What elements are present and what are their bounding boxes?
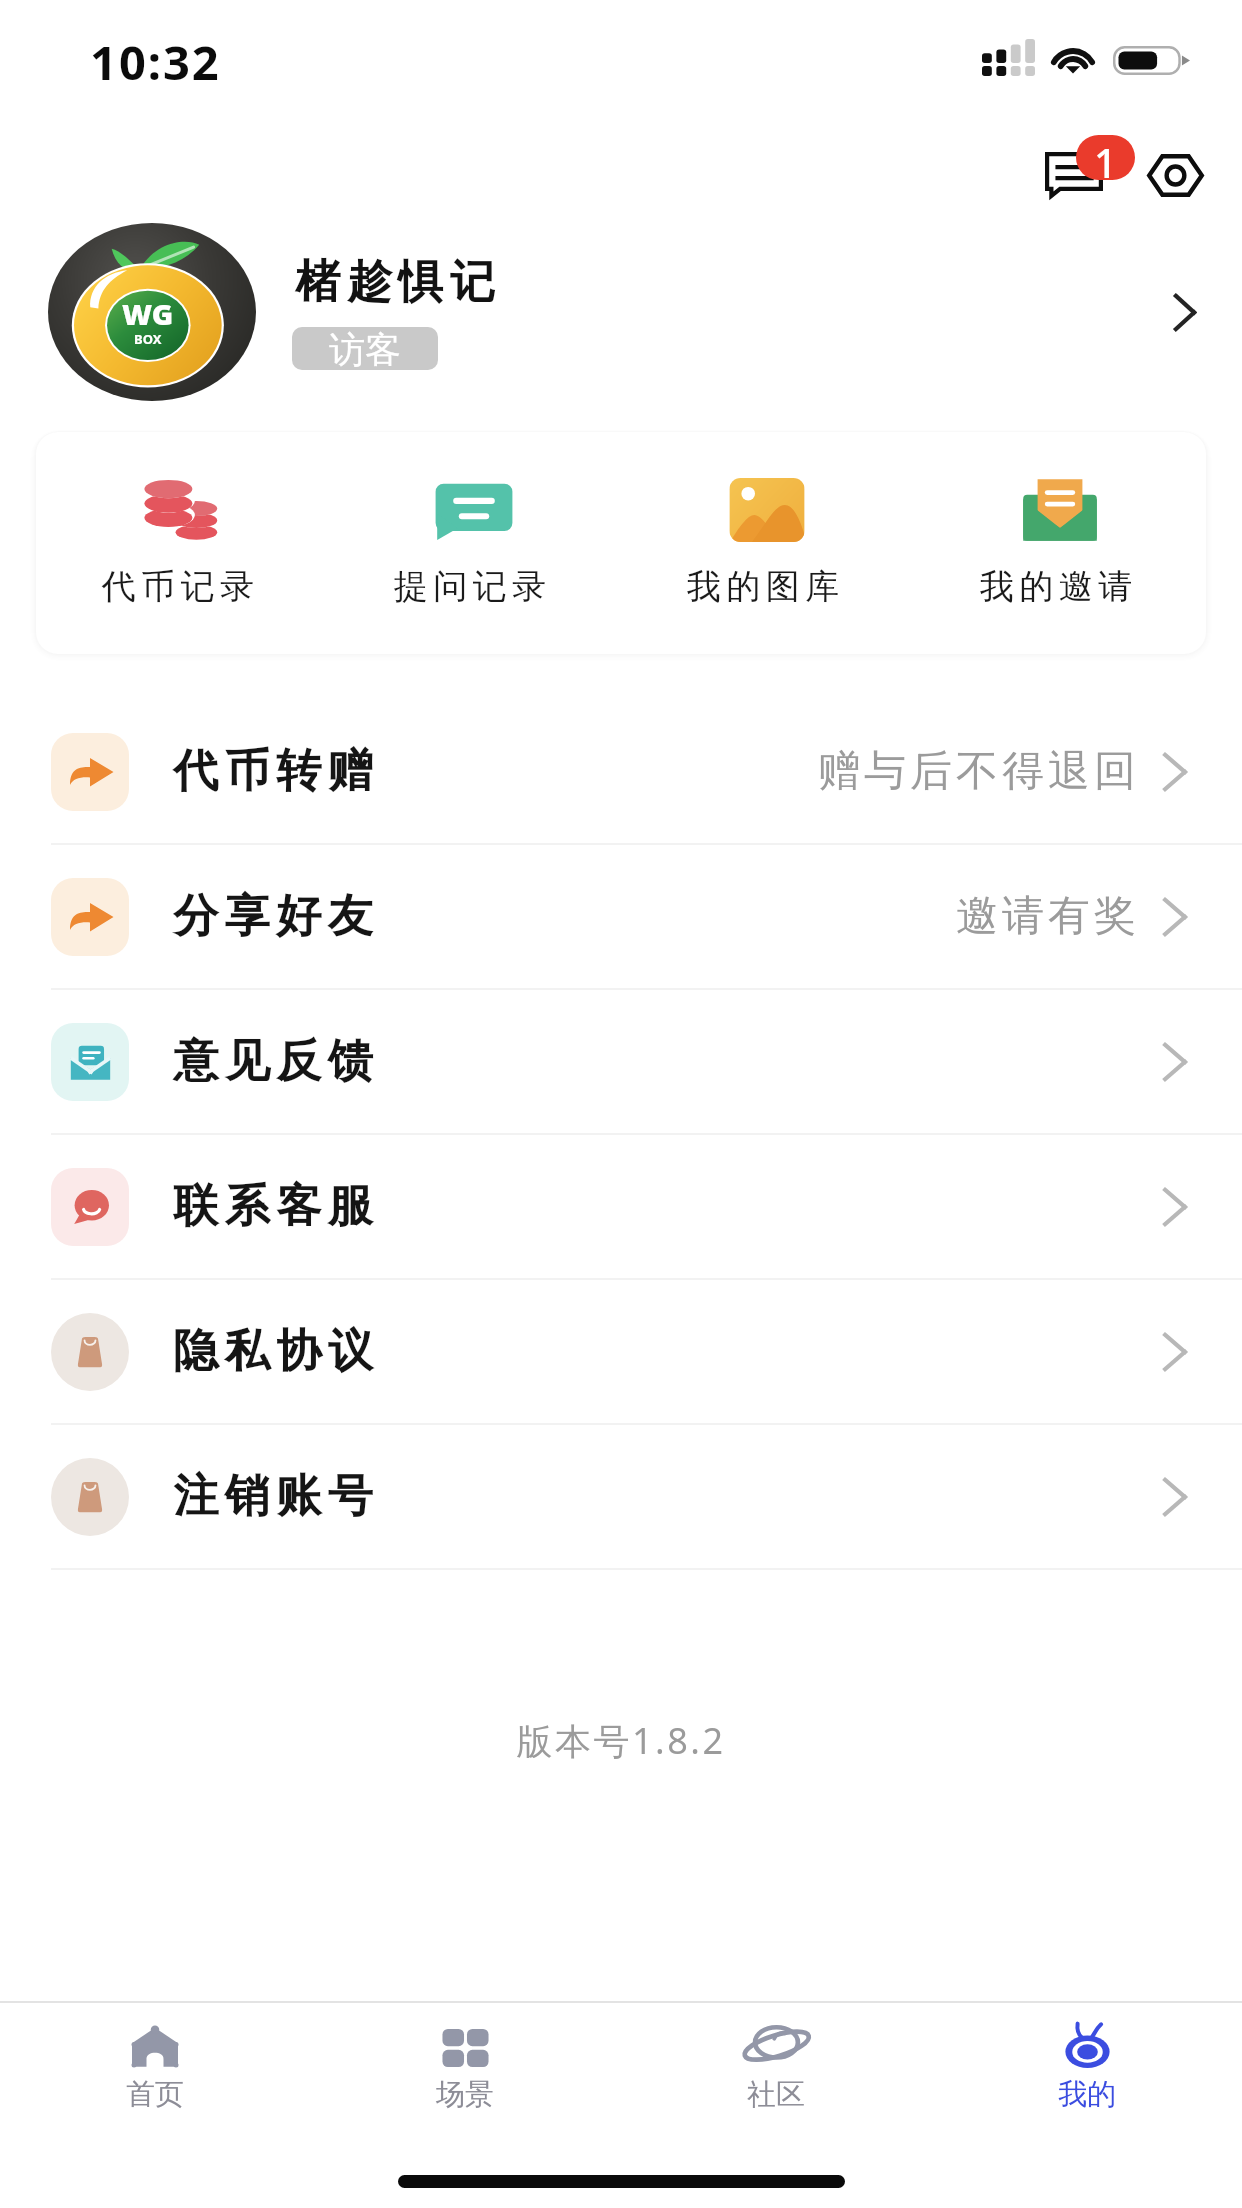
staticText: 邀请有奖 bbox=[954, 890, 1138, 943]
button[interactable]: 我的图库 bbox=[620, 432, 913, 608]
button[interactable]: 意见反馈 bbox=[0, 990, 1242, 1135]
staticText: BOX bbox=[134, 330, 162, 348]
staticText: 隐私协议 bbox=[170, 1323, 376, 1380]
staticText: 1 bbox=[1094, 135, 1117, 180]
button[interactable]: 社区 bbox=[620, 2022, 931, 2113]
staticText: 代币转赠 bbox=[170, 743, 376, 800]
staticText: 赠与后不得退回 bbox=[816, 745, 1138, 798]
button[interactable]: 联系客服 bbox=[0, 1135, 1242, 1280]
staticText: 我的邀请 bbox=[977, 565, 1135, 608]
button[interactable]: 首页 bbox=[0, 2022, 310, 2113]
button[interactable]: 设置 bbox=[1147, 154, 1204, 197]
button[interactable]: 我的邀请 bbox=[913, 432, 1206, 608]
staticText: 版本号1.8.2 bbox=[0, 1716, 1242, 1765]
button[interactable]: 分享好友 bbox=[0, 845, 1242, 990]
button[interactable]: 隐私协议 bbox=[0, 1280, 1242, 1425]
button[interactable]: 注销账号 bbox=[0, 1425, 1242, 1570]
staticText: 社区 bbox=[747, 2076, 805, 2113]
staticText: 我的图库 bbox=[684, 565, 842, 608]
staticText: 首页 bbox=[126, 2076, 184, 2113]
staticText: 分享好友 bbox=[170, 888, 376, 945]
staticText: 提问记录 bbox=[391, 565, 549, 608]
staticText: 10:32 bbox=[90, 30, 221, 94]
staticText: 代币记录 bbox=[99, 565, 257, 608]
button[interactable]: 消息 bbox=[1035, 132, 1145, 206]
staticText: 注销账号 bbox=[170, 1468, 376, 1525]
staticText: 楮趁惧记 bbox=[292, 254, 498, 311]
staticText: 联系客服 bbox=[170, 1178, 376, 1235]
button[interactable]: 提问记录 bbox=[328, 432, 620, 608]
staticText: 意见反馈 bbox=[170, 1033, 376, 1090]
staticText: 访客 bbox=[329, 327, 401, 370]
staticText: 场景 bbox=[436, 2076, 494, 2113]
button[interactable]: 代币转赠 bbox=[0, 700, 1242, 845]
button[interactable]: 代币记录 bbox=[36, 432, 328, 608]
button[interactable]: 我的 bbox=[931, 2022, 1242, 2113]
staticText: 我的 bbox=[1058, 2076, 1116, 2113]
staticText: WG bbox=[122, 294, 174, 333]
button[interactable]: WG bbox=[0, 212, 1242, 412]
button[interactable]: 场景 bbox=[310, 2022, 620, 2113]
